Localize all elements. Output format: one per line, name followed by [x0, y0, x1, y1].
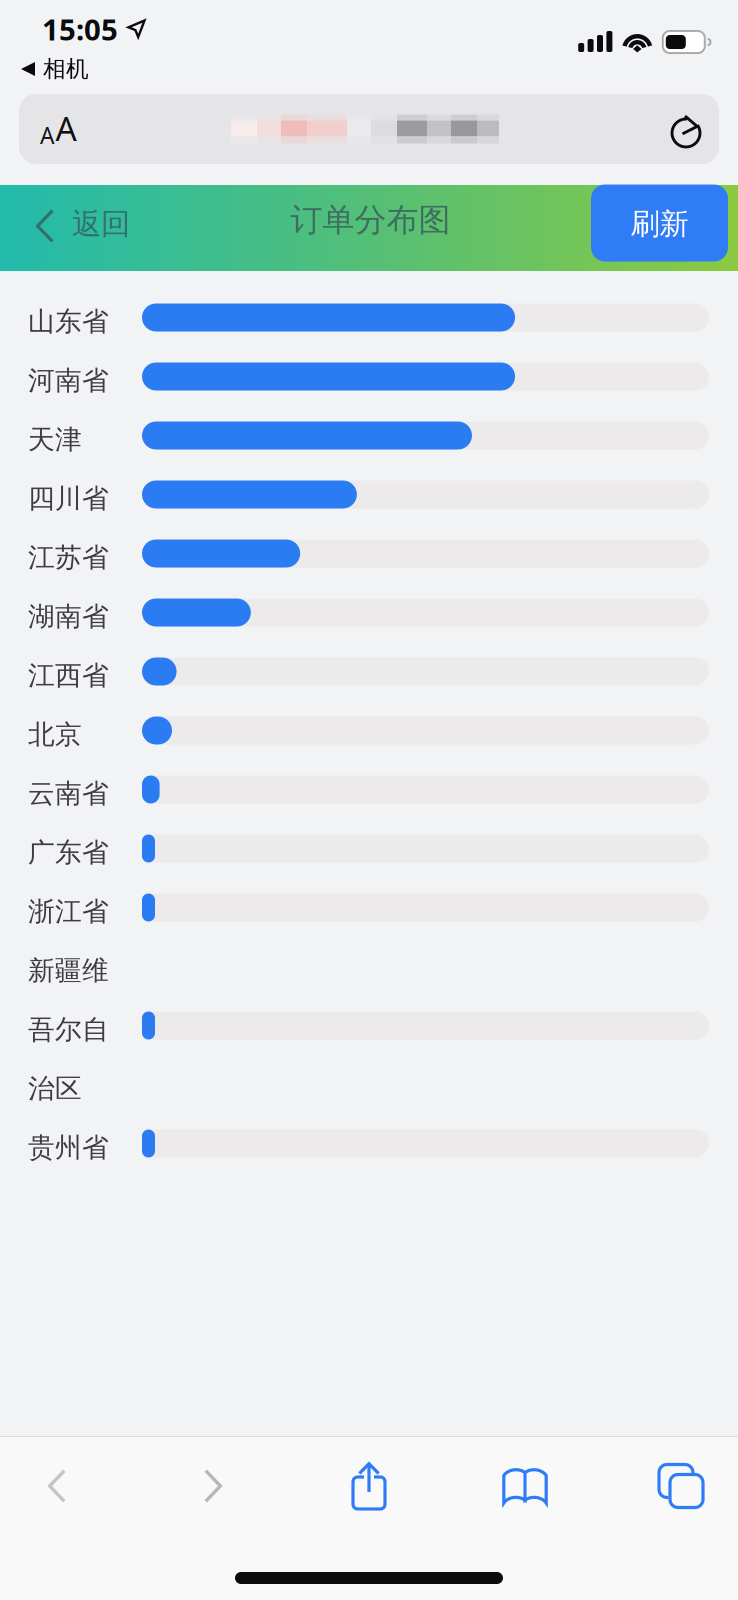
staticText: 湖南省 — [28, 600, 109, 633]
staticText: 治区 — [28, 1072, 82, 1105]
staticText: 新疆维 — [28, 954, 109, 987]
button[interactable]: Back — [0, 1437, 114, 1535]
staticText: 江苏省 — [28, 541, 109, 574]
staticText: 江西省 — [28, 659, 109, 692]
staticText: 贵州省 — [28, 1131, 109, 1164]
staticText: A — [40, 120, 54, 151]
staticText: 云南省 — [28, 777, 109, 810]
staticText: 广东省 — [28, 836, 109, 869]
staticText: 北京 — [28, 718, 82, 751]
staticText: 天津 — [28, 423, 82, 456]
button[interactable]: Forward — [156, 1437, 270, 1535]
button[interactable]: Bookmarks — [468, 1437, 582, 1535]
button[interactable]: Tabs — [624, 1437, 738, 1535]
button[interactable]: Page settings — [19, 94, 115, 164]
staticText: 返回 — [72, 205, 130, 242]
staticText: 相机 — [43, 55, 89, 83]
button[interactable]: Reload — [653, 94, 719, 164]
staticText: 吾尔自 — [28, 1013, 109, 1046]
button[interactable]: 相机 — [0, 52, 738, 86]
staticText: 浙江省 — [28, 895, 109, 928]
staticText: 15:05 — [42, 9, 118, 49]
staticText: 山东省 — [28, 305, 109, 338]
button[interactable]: 刷新 — [591, 189, 728, 266]
staticText: 订单分布图 — [290, 200, 450, 240]
staticText: 刷新 — [630, 205, 688, 242]
staticText: A — [55, 105, 76, 151]
button[interactable]: 返回 — [0, 185, 130, 271]
staticText: 四川省 — [28, 482, 109, 515]
staticText: 河南省 — [28, 364, 109, 397]
button[interactable]: Share — [312, 1437, 426, 1535]
